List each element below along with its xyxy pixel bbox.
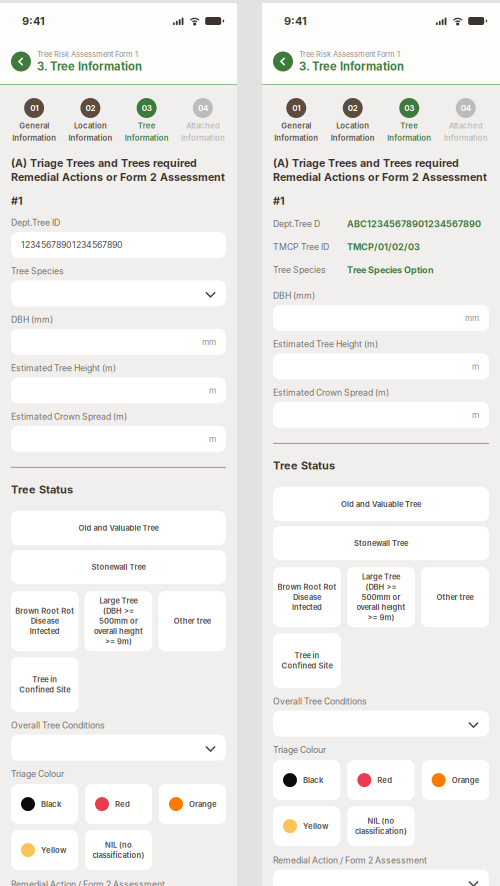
button[interactable]: mm [11, 329, 226, 355]
staticText: classification) [355, 827, 407, 836]
staticText: Large Tree [99, 596, 137, 605]
staticText: #1 [273, 194, 285, 207]
staticText: Location [74, 121, 107, 130]
staticText: Confined Site [281, 661, 332, 670]
button[interactable] [273, 870, 489, 886]
staticText: Old and Valuable Tree [78, 523, 158, 533]
staticText: Tree Status [273, 459, 335, 472]
button[interactable]: NIL (no [347, 806, 415, 846]
button[interactable]: 04 [175, 98, 231, 143]
staticText: Tree [400, 121, 418, 130]
staticText: (A) Triage Trees and Trees required [273, 157, 459, 170]
staticText: Information [387, 133, 431, 143]
staticText: Estimated Tree Height (m) [273, 339, 378, 349]
button[interactable]: Stonewall Tree [11, 550, 226, 584]
button[interactable]: Orange [159, 784, 226, 824]
button[interactable] [11, 735, 226, 761]
button[interactable]: 01 [268, 98, 324, 143]
staticText: Yellow [41, 845, 66, 855]
button[interactable]: 03 [118, 98, 175, 143]
staticText: DBH (mm) [11, 314, 53, 325]
staticText: 02 [85, 103, 95, 113]
button[interactable] [273, 711, 489, 737]
button[interactable]: Large Tree [347, 567, 415, 627]
button[interactable]: 12345678901234567890 [11, 232, 226, 258]
button[interactable]: 02 [62, 98, 118, 143]
staticText: Estimated Crown Spread (m) [273, 387, 389, 398]
button[interactable]: Other tree [421, 567, 489, 627]
button[interactable]: Back [273, 51, 293, 71]
staticText: Tree Species Option [347, 264, 434, 275]
staticText: >= 9m) [367, 613, 394, 622]
button[interactable]: Old and Valuable Tree [273, 487, 489, 521]
button[interactable]: Tree in [273, 633, 341, 688]
staticText: Infected [292, 603, 322, 612]
button[interactable]: Brown Root Rot [11, 591, 79, 651]
staticText: 9:41 [284, 14, 307, 28]
staticText: Remedial Action / Form 2 Assessment [273, 855, 427, 866]
staticText: Orange [452, 775, 480, 785]
button[interactable]: 01 [6, 98, 62, 143]
staticText: Dept.Tree ID [11, 217, 60, 228]
staticText: Brown Root Rot [15, 606, 74, 615]
staticText: (DBH >= [365, 582, 396, 591]
button[interactable]: Yellow [11, 830, 78, 870]
staticText: Information [68, 133, 112, 143]
button[interactable] [11, 280, 226, 306]
staticText: Large Tree [362, 572, 400, 581]
staticText: Other tree [174, 616, 211, 626]
staticText: 12345678901234567890 [21, 240, 123, 250]
staticText: ABC12345678901234567890 [347, 218, 481, 229]
staticText: classification) [92, 851, 144, 860]
button[interactable]: Red [347, 760, 415, 800]
staticText: General [281, 121, 311, 130]
button[interactable]: NIL (no [85, 830, 152, 870]
staticText: m [209, 434, 216, 444]
button[interactable]: 03 [381, 98, 437, 143]
button[interactable]: Black [11, 784, 78, 824]
button[interactable]: Old and Valuable Tree [11, 511, 226, 545]
staticText: mm [202, 337, 216, 347]
staticText: Attached [186, 121, 220, 130]
staticText: 01 [30, 103, 38, 113]
button[interactable]: Tree in [11, 657, 79, 712]
button[interactable]: 02 [324, 98, 381, 143]
staticText: Triage Colour [273, 745, 326, 755]
staticText: m [472, 410, 479, 420]
staticText: (DBH >= [103, 606, 134, 615]
staticText: 500mm or [361, 592, 400, 602]
staticText: Triage Colour [11, 769, 64, 779]
staticText: Tree in [294, 651, 319, 660]
staticText: Tree in [32, 675, 57, 684]
staticText: TMCP/01/02/03 [347, 241, 420, 252]
staticText: (A) Triage Trees and Trees required [11, 157, 197, 170]
staticText: TMCP Tree ID [273, 242, 329, 252]
button[interactable]: Brown Root Rot [273, 567, 341, 627]
button[interactable]: mm [273, 305, 489, 331]
staticText: Estimated Tree Height (m) [11, 363, 116, 373]
staticText: DBH (mm) [273, 290, 315, 301]
staticText: Disease [293, 592, 321, 602]
button[interactable]: Orange [422, 760, 489, 800]
button[interactable]: Black [273, 760, 340, 800]
button[interactable]: Large Tree [85, 591, 152, 651]
staticText: 9:41 [22, 14, 45, 28]
staticText: Black [41, 799, 61, 809]
button[interactable]: Back [11, 51, 31, 71]
button[interactable]: m [11, 426, 226, 452]
button[interactable]: Yellow [273, 806, 340, 846]
staticText: Information [444, 133, 488, 143]
button[interactable]: Stonewall Tree [273, 526, 489, 560]
staticText: Estimated Crown Spread (m) [11, 411, 127, 422]
staticText: Remedial Actions or Form 2 Assessment [273, 171, 487, 183]
button[interactable]: Red [85, 784, 152, 824]
staticText: Dept.Tree D [273, 219, 320, 229]
staticText: Information [274, 133, 318, 143]
staticText: Brown Root Rot [277, 582, 336, 591]
button[interactable]: 04 [437, 98, 494, 143]
button[interactable]: Other tree [158, 591, 226, 651]
button[interactable]: m [273, 353, 489, 379]
button[interactable]: m [273, 402, 489, 428]
staticText: NIL (no [367, 816, 394, 826]
button[interactable]: m [11, 377, 226, 403]
